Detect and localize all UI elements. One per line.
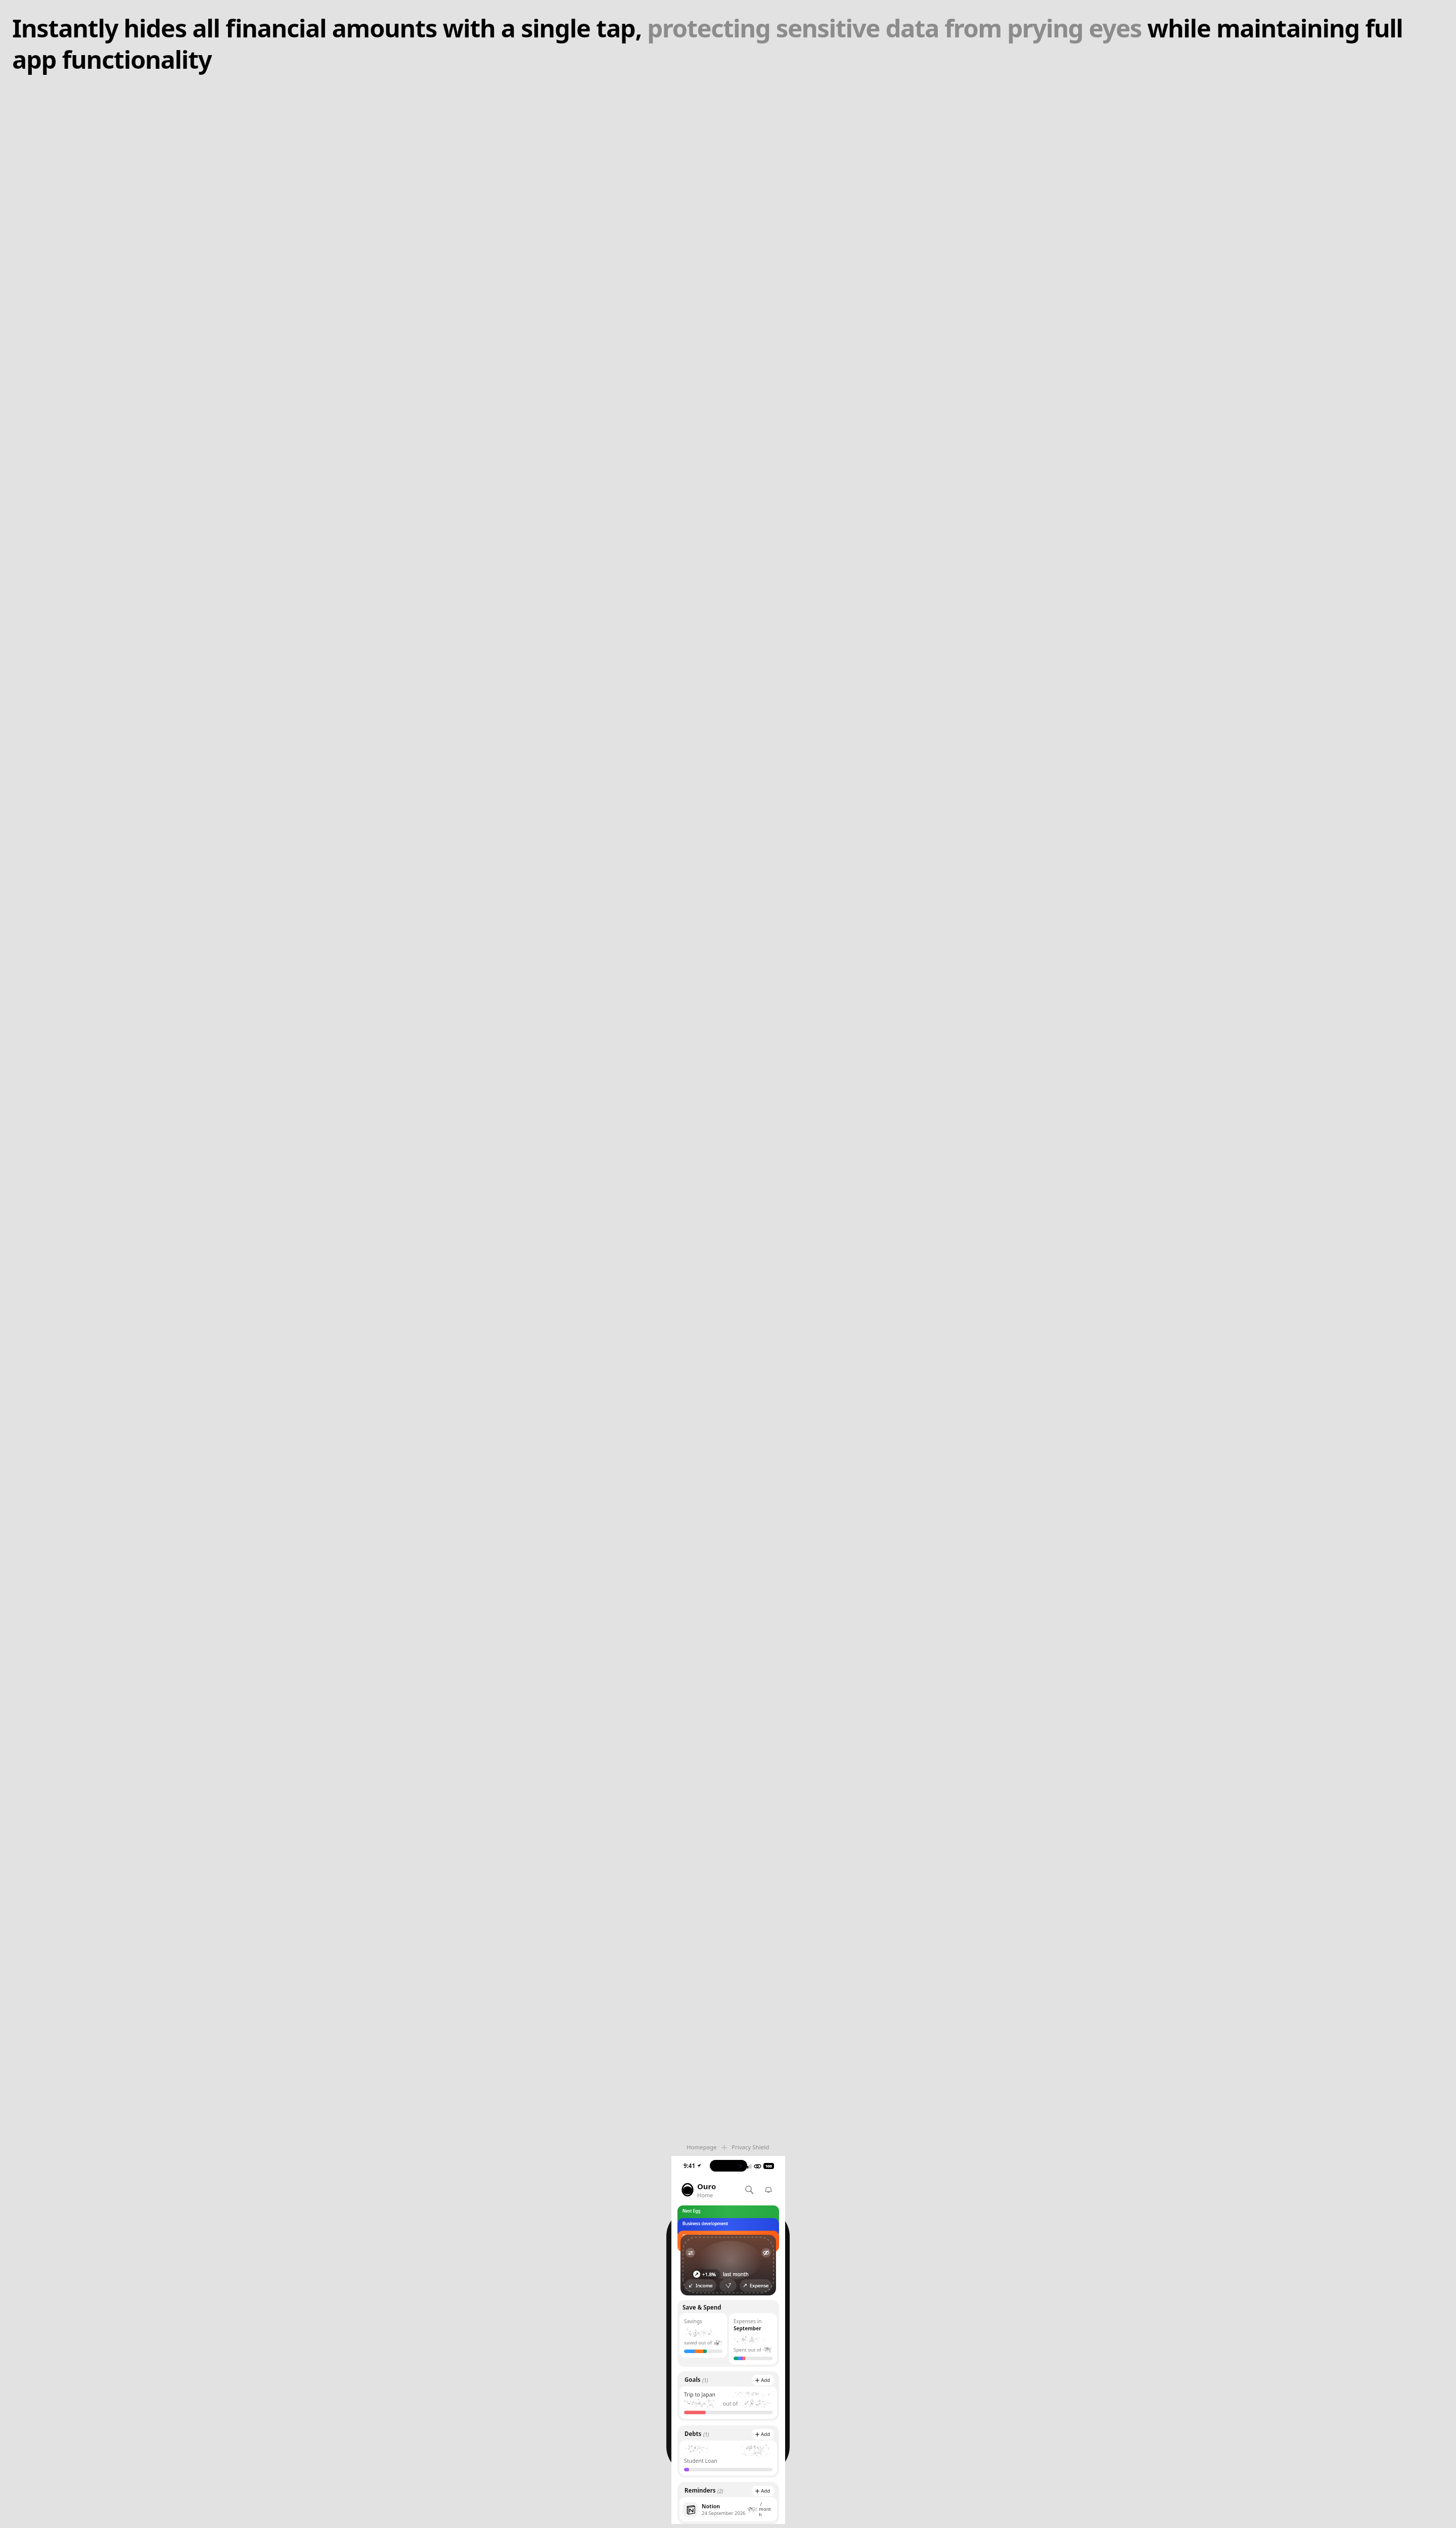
staticText: Personal [682, 2233, 700, 2239]
button[interactable]: Add [752, 2375, 774, 2385]
button[interactable]: Student Loan [679, 2441, 777, 2475]
button[interactable]: Add [752, 2486, 774, 2496]
button[interactable]: Savings [679, 2313, 727, 2358]
staticText: Goals [685, 2376, 701, 2384]
staticText: out of [723, 2400, 738, 2407]
staticText: (1) [702, 2377, 708, 2384]
staticText: Privacy Shield [732, 2143, 769, 2151]
staticText: Expense [750, 2282, 769, 2289]
staticText: Notion [702, 2503, 720, 2510]
button[interactable]: Hide amounts [761, 2248, 771, 2258]
staticText: saved out of [684, 2339, 712, 2346]
button[interactable]: Expense [740, 2279, 772, 2292]
staticText: Spent out of [734, 2346, 761, 2353]
staticText: Reminders [685, 2487, 716, 2495]
button[interactable]: Search [743, 2183, 756, 2196]
button[interactable]: Card settings [686, 2248, 695, 2258]
other: Notifications [764, 2185, 773, 2194]
staticText: Savings [684, 2318, 702, 2325]
staticText: Home [697, 2191, 713, 2199]
staticText: 100 [765, 2163, 772, 2169]
staticText: Save & Spend [682, 2304, 721, 2312]
staticText: Expenses in September [734, 2318, 772, 2332]
button[interactable]: Nest Egg [677, 2205, 779, 2226]
staticText: (1) [703, 2431, 709, 2438]
staticText: Trip to Japan [684, 2391, 716, 2398]
staticText: 9:41 [684, 2162, 695, 2170]
staticText: (2) [717, 2488, 723, 2495]
button[interactable]: Add [752, 2429, 774, 2440]
staticText: Add [761, 2431, 770, 2437]
staticText: +1.8% [702, 2271, 716, 2278]
staticText: Income [696, 2282, 713, 2289]
staticText: Debts [685, 2430, 702, 2438]
button[interactable]: Transfer [719, 2279, 737, 2292]
button[interactable]: Notifications [762, 2183, 775, 2196]
staticText: Homepage [687, 2143, 717, 2151]
button[interactable]: Personal [677, 2231, 779, 2252]
staticText: Instantly hides all financial amounts wi… [12, 11, 1416, 76]
other: Search [745, 2185, 754, 2194]
button[interactable]: Business development [677, 2218, 779, 2238]
staticText: Student Loan [684, 2457, 717, 2464]
button[interactable]: Income [685, 2279, 716, 2292]
staticText: 24 September 2026 [702, 2510, 746, 2516]
staticText: Add [761, 2488, 770, 2494]
staticText: Add [761, 2377, 770, 2383]
staticText: last month [723, 2271, 749, 2278]
button[interactable]: Trip to Japan [679, 2386, 777, 2419]
staticText: / month [759, 2501, 773, 2518]
staticText: Business development [682, 2221, 729, 2227]
staticText: Nest Egg [682, 2208, 701, 2214]
button[interactable]: Expenses in September [729, 2313, 777, 2365]
button[interactable]: Notion [679, 2497, 777, 2521]
staticText: Ouro [697, 2181, 716, 2191]
